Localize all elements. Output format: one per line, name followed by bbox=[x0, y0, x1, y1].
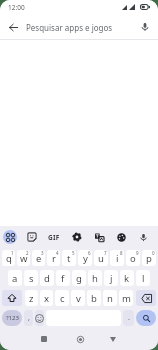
staticText: s bbox=[29, 272, 34, 285]
staticText: n bbox=[107, 292, 113, 305]
button[interactable]: GIF bbox=[45, 226, 63, 248]
staticText: k bbox=[124, 272, 130, 285]
button[interactable]: ?123 bbox=[2, 310, 22, 326]
staticText: , bbox=[28, 313, 30, 323]
button[interactable]: f bbox=[56, 270, 70, 286]
staticText: d bbox=[44, 272, 50, 285]
button[interactable]: q bbox=[2, 250, 15, 266]
staticText: p bbox=[146, 252, 152, 265]
staticText: w bbox=[20, 252, 28, 265]
staticText: o bbox=[130, 252, 136, 265]
button[interactable]: Settings bbox=[68, 226, 86, 248]
staticText: z bbox=[29, 292, 34, 305]
button[interactable]: g bbox=[72, 270, 86, 286]
button[interactable]: Emoji bbox=[35, 310, 44, 326]
button[interactable]: Shift bbox=[2, 290, 22, 306]
button[interactable]: Recents bbox=[33, 328, 55, 350]
button[interactable]: r bbox=[47, 250, 60, 266]
button[interactable]: s bbox=[24, 270, 38, 286]
staticText: 7 bbox=[104, 250, 107, 256]
staticText: f bbox=[61, 272, 65, 285]
staticText: x bbox=[44, 292, 50, 305]
staticText: 12:00 bbox=[8, 3, 25, 12]
button[interactable]: c bbox=[55, 290, 69, 306]
button[interactable]: j bbox=[104, 270, 118, 286]
staticText: h bbox=[92, 272, 98, 285]
button[interactable]: v bbox=[71, 290, 85, 306]
button[interactable]: d bbox=[40, 270, 54, 286]
button[interactable]: z bbox=[25, 290, 38, 306]
staticText: 8 bbox=[120, 250, 123, 256]
button[interactable]: x bbox=[40, 290, 53, 306]
staticText: i bbox=[116, 252, 119, 265]
button[interactable]: h bbox=[88, 270, 102, 286]
button[interactable]: l bbox=[136, 270, 150, 286]
staticText: b bbox=[91, 292, 97, 305]
staticText: j bbox=[110, 272, 113, 285]
button[interactable]: n bbox=[103, 290, 117, 306]
button[interactable]: Voice search bbox=[132, 14, 158, 40]
button[interactable]: Theme bbox=[112, 226, 130, 248]
button[interactable]: Voice input bbox=[134, 226, 152, 248]
staticText: u bbox=[98, 252, 104, 265]
staticText: 9 bbox=[136, 250, 139, 256]
staticText: . bbox=[128, 313, 130, 323]
button[interactable]: y bbox=[78, 250, 92, 266]
button[interactable]: Stickers bbox=[23, 226, 41, 248]
button[interactable]: k bbox=[120, 270, 134, 286]
button[interactable]: Search bbox=[136, 310, 156, 326]
staticText: 3 bbox=[41, 250, 44, 256]
staticText: 5 bbox=[72, 250, 75, 256]
staticText: 0 bbox=[152, 250, 155, 256]
staticText: l bbox=[142, 272, 145, 285]
button[interactable]: Toolbar bbox=[1, 226, 19, 248]
button[interactable]: u bbox=[94, 250, 108, 266]
button[interactable]: Back bbox=[0, 14, 26, 40]
staticText: g bbox=[76, 272, 82, 285]
button[interactable]: Home bbox=[69, 328, 91, 350]
staticText: t bbox=[67, 252, 71, 265]
button[interactable]: t bbox=[62, 250, 76, 266]
staticText: 6 bbox=[88, 250, 91, 256]
button[interactable]: Period bbox=[123, 310, 134, 326]
staticText: ?123 bbox=[6, 314, 19, 322]
staticText: m bbox=[122, 292, 131, 305]
staticText: 2 bbox=[26, 250, 29, 256]
staticText: 4 bbox=[56, 250, 59, 256]
staticText: e bbox=[36, 252, 42, 265]
staticText: y bbox=[83, 252, 88, 265]
button[interactable]: e bbox=[32, 250, 45, 266]
button[interactable]: o bbox=[126, 250, 140, 266]
button[interactable]: i bbox=[110, 250, 124, 266]
staticText: a bbox=[12, 272, 18, 285]
button[interactable]: w bbox=[17, 250, 30, 266]
button[interactable]: Comma bbox=[24, 310, 33, 326]
button[interactable]: Back bbox=[102, 328, 124, 350]
button[interactable]: b bbox=[87, 290, 101, 306]
staticText: v bbox=[76, 292, 81, 305]
button[interactable]: Translate bbox=[90, 226, 108, 248]
staticText: 1 bbox=[11, 250, 14, 256]
staticText: q bbox=[6, 252, 12, 265]
staticText: c bbox=[60, 292, 65, 305]
staticText: r bbox=[52, 252, 56, 265]
button[interactable]: m bbox=[119, 290, 133, 306]
button[interactable]: a bbox=[8, 270, 22, 286]
staticText: GIF bbox=[48, 233, 60, 242]
button[interactable]: Backspace bbox=[136, 290, 156, 306]
staticText: Pesquisar apps e jogos bbox=[26, 22, 132, 33]
button[interactable]: p bbox=[142, 250, 156, 266]
